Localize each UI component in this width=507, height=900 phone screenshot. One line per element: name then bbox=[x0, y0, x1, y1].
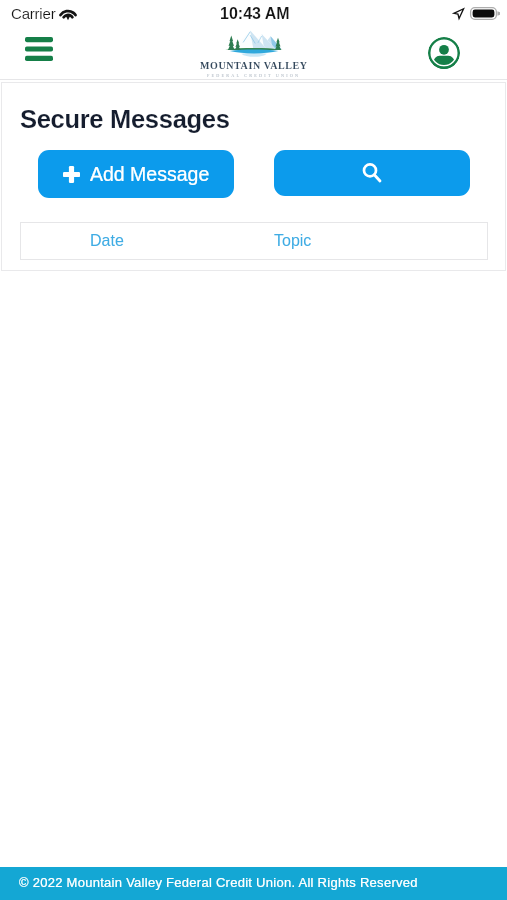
staticText: Carrier bbox=[11, 5, 56, 22]
button[interactable]: Search messages bbox=[274, 150, 470, 196]
staticText: © 2022 Mountain Valley Federal Credit Un… bbox=[19, 875, 418, 890]
staticText: Add Message bbox=[90, 163, 210, 185]
button[interactable]: Account bbox=[423, 32, 465, 74]
staticText: FEDERAL CREDIT UNION bbox=[207, 73, 301, 78]
staticText: Secure Messages bbox=[20, 105, 230, 133]
button[interactable]: Open navigation menu bbox=[13, 25, 65, 72]
staticText: 10:43 AM bbox=[220, 5, 290, 23]
button[interactable]: Date bbox=[20, 222, 194, 260]
staticText: Topic bbox=[274, 232, 312, 250]
staticText: MOUNTAIN VALLEY bbox=[200, 60, 308, 71]
button[interactable]: Topic bbox=[194, 222, 392, 260]
button[interactable]: Add Message bbox=[38, 150, 234, 198]
staticText: Date bbox=[90, 232, 124, 250]
